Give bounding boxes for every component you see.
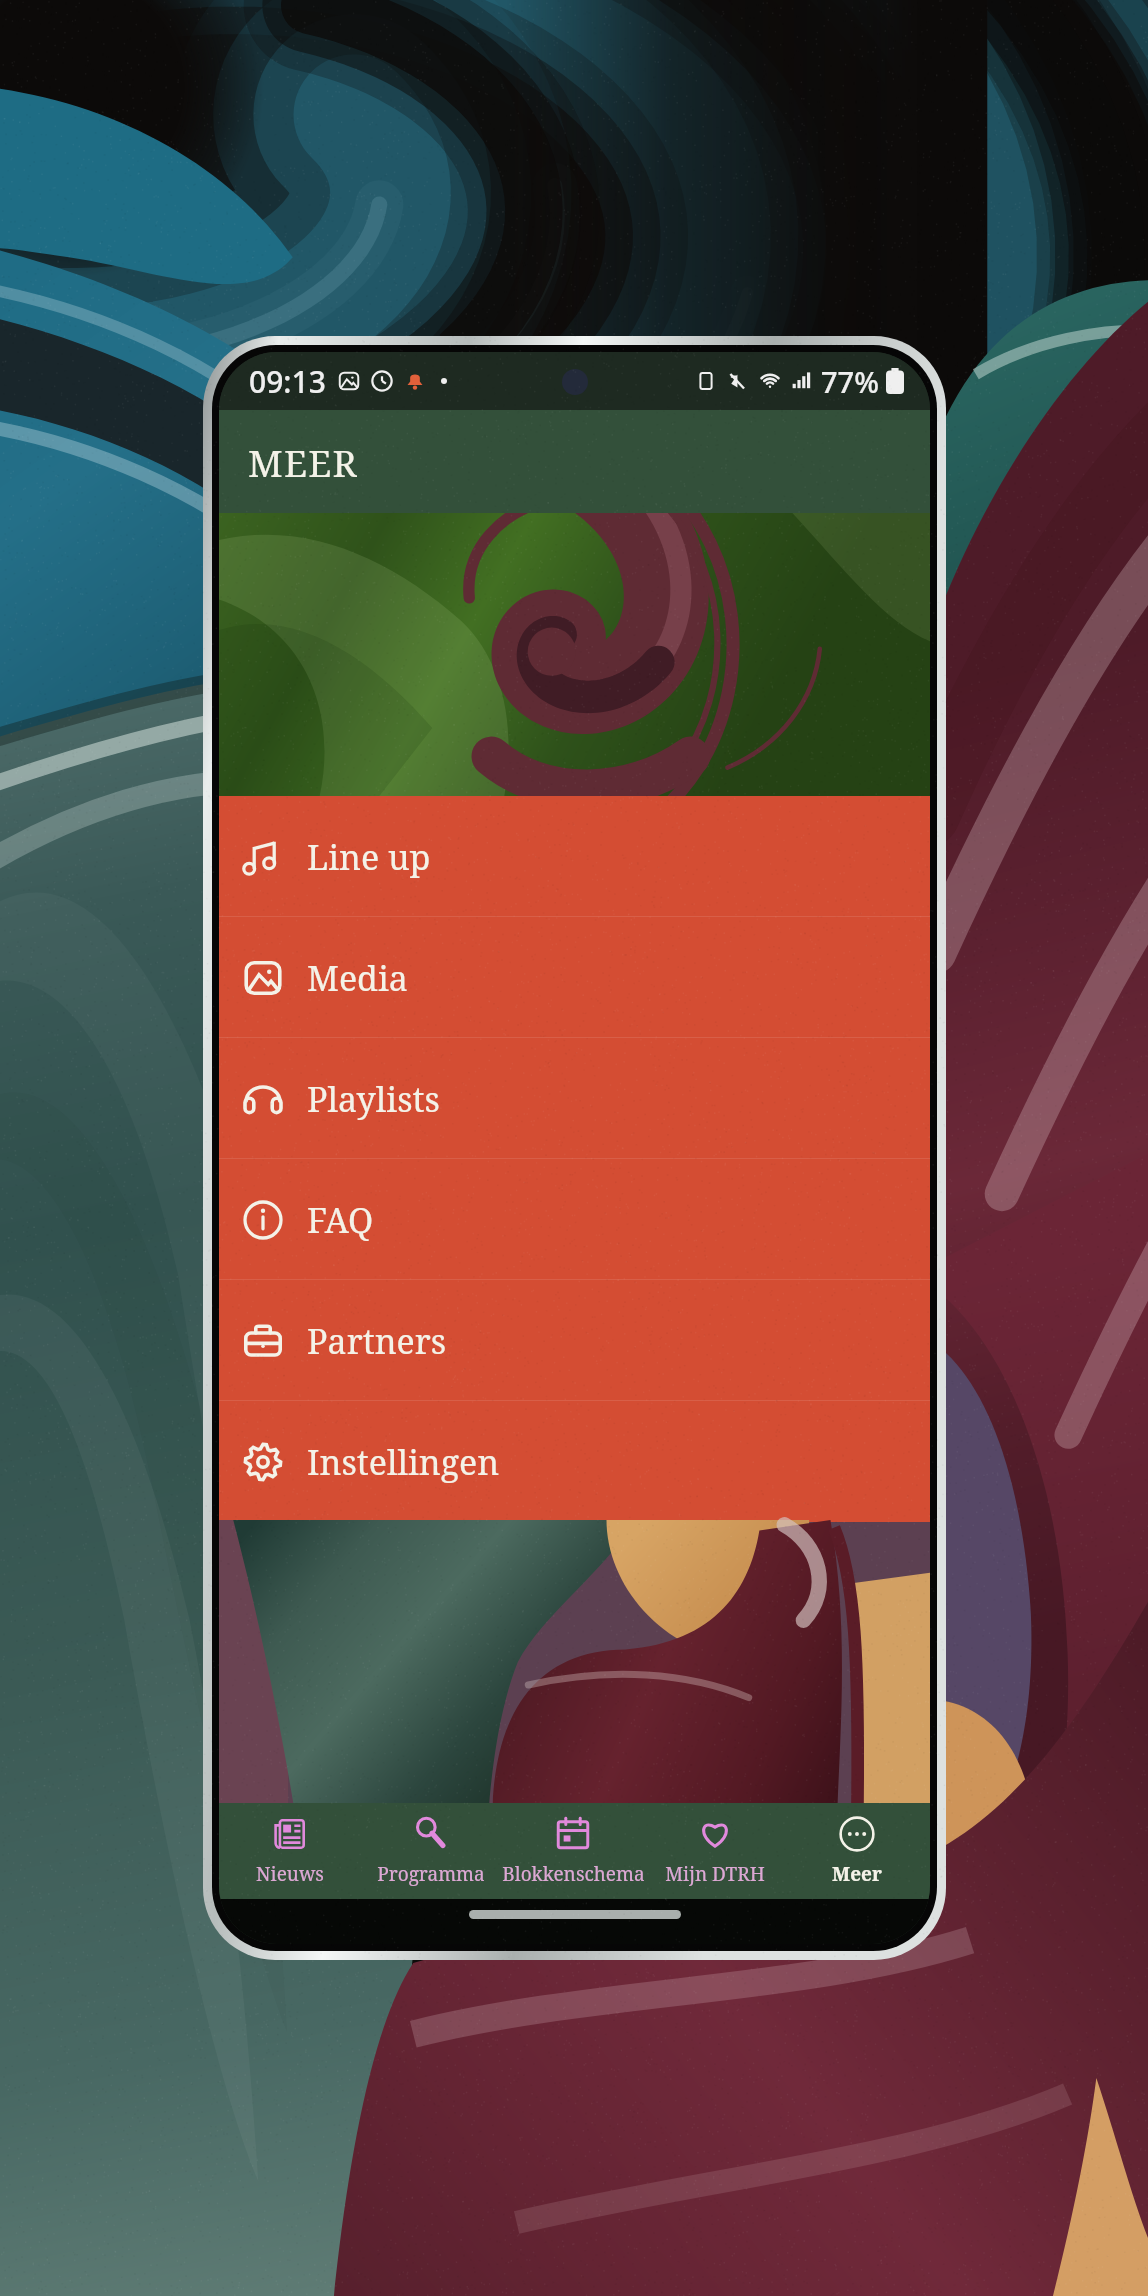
staticText: 09:13 [249,361,326,402]
staticText: Instellingen [307,1439,500,1485]
staticText: FAQ [307,1197,374,1243]
button[interactable]: Meer [786,1803,927,1899]
button[interactable]: Blokkenschema [502,1803,644,1899]
button[interactable]: Media [219,917,930,1038]
staticText: MEER [248,437,358,487]
button[interactable]: Nieuws [219,1803,360,1899]
staticText: Partners [307,1318,447,1364]
staticText: Blokkenschema [502,1861,644,1887]
staticText: Meer [832,1861,882,1887]
button[interactable]: Mijn DTRH [644,1803,786,1899]
button[interactable]: Programma [360,1803,502,1899]
staticText: Programma [377,1861,485,1887]
staticText: Line up [307,834,431,880]
button[interactable]: Playlists [219,1038,930,1159]
staticText: Media [307,955,408,1001]
staticText: Nieuws [256,1861,324,1887]
button[interactable]: FAQ [219,1159,930,1280]
staticText: Mijn DTRH [665,1861,765,1887]
button[interactable]: Instellingen [219,1401,930,1522]
button[interactable]: Partners [219,1280,930,1401]
staticText: 77% [821,362,879,401]
staticText: Playlists [307,1076,440,1122]
button[interactable]: Line up [219,796,930,917]
